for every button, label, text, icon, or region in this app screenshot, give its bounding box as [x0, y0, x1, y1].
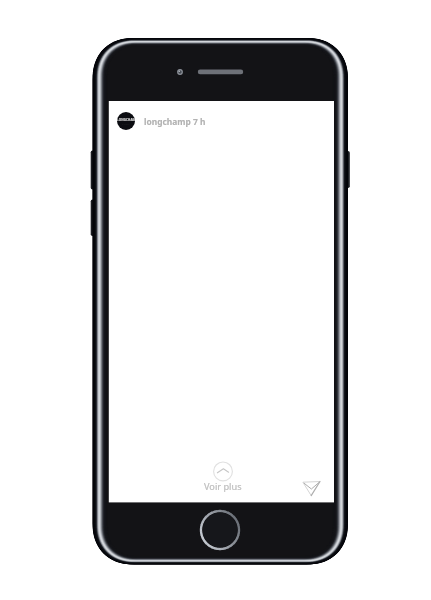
- staticText: longchamp 7 h: [144, 116, 206, 127]
- button[interactable]: LONGCHAMP: [117, 112, 210, 130]
- staticText: Voir plus: [204, 480, 242, 493]
- button[interactable]: Voir plus: [204, 461, 242, 494]
- staticText: LONGCHAMP: [117, 118, 135, 122]
- button[interactable]: Send message: [299, 475, 325, 501]
